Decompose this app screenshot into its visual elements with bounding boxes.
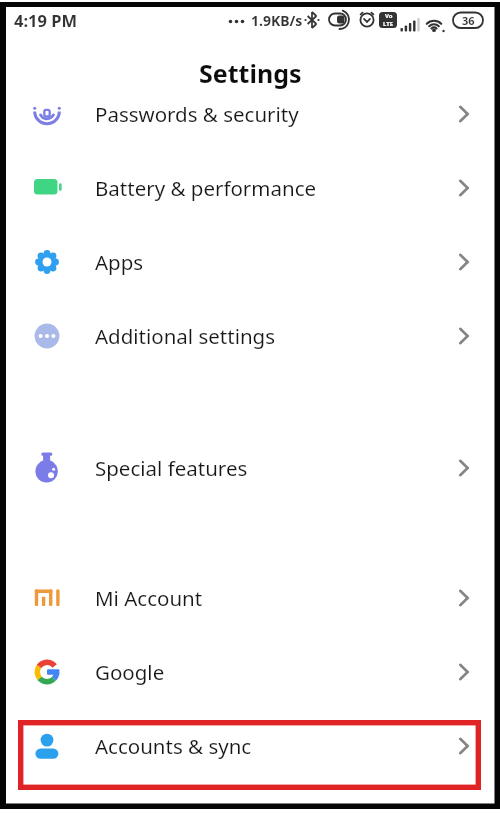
staticText: Settings [199, 56, 302, 90]
staticText: Apps [95, 248, 144, 276]
staticText: 4:19 PM [14, 9, 78, 31]
button[interactable]: Passwords & security [0, 77, 500, 151]
button[interactable]: Accounts & sync [0, 709, 500, 783]
staticText: Battery & performance [95, 174, 317, 202]
button[interactable]: Special features [0, 431, 500, 505]
button[interactable]: Apps [0, 225, 500, 299]
staticText: Passwords & security [95, 100, 299, 128]
staticText: Vo [385, 12, 393, 20]
staticText: LTE [383, 20, 394, 28]
button[interactable]: Google [0, 635, 500, 709]
staticText: Google [95, 658, 165, 686]
staticText: Additional settings [95, 322, 276, 350]
staticText: 1.9KB/s [251, 11, 303, 30]
button[interactable]: Mi Account [0, 561, 500, 635]
staticText: Accounts & sync [95, 732, 252, 760]
button[interactable]: Additional settings [0, 299, 500, 373]
staticText: 36 [462, 13, 475, 28]
staticText: Special features [95, 454, 248, 482]
button[interactable]: Battery & performance [0, 151, 500, 225]
staticText: Mi Account [95, 584, 203, 612]
